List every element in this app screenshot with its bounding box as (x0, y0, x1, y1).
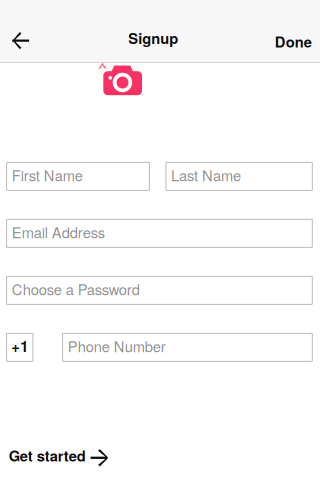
button[interactable]: Last Name (166, 162, 312, 190)
button[interactable]: Phone Number (63, 333, 312, 361)
staticText: Last Name (171, 164, 241, 185)
staticText: +1 (11, 335, 28, 356)
button[interactable]: Get started (0, 438, 117, 473)
staticText: Phone Number (68, 335, 166, 356)
button[interactable]: Choose a Password (7, 276, 312, 304)
staticText: Choose a Password (12, 278, 140, 299)
button[interactable]: Email Address (7, 219, 312, 247)
button[interactable]: First Name (7, 162, 149, 190)
staticText: Email Address (12, 221, 105, 242)
staticText: Get started (9, 445, 86, 466)
button[interactable]: Back (0, 20, 40, 56)
staticText: Signup (128, 27, 178, 48)
staticText: First Name (12, 164, 83, 185)
staticText: Done (275, 31, 312, 52)
button[interactable]: +1 (7, 333, 33, 361)
button[interactable]: Done (261, 17, 320, 58)
button[interactable]: Add profile photo (103, 63, 142, 95)
